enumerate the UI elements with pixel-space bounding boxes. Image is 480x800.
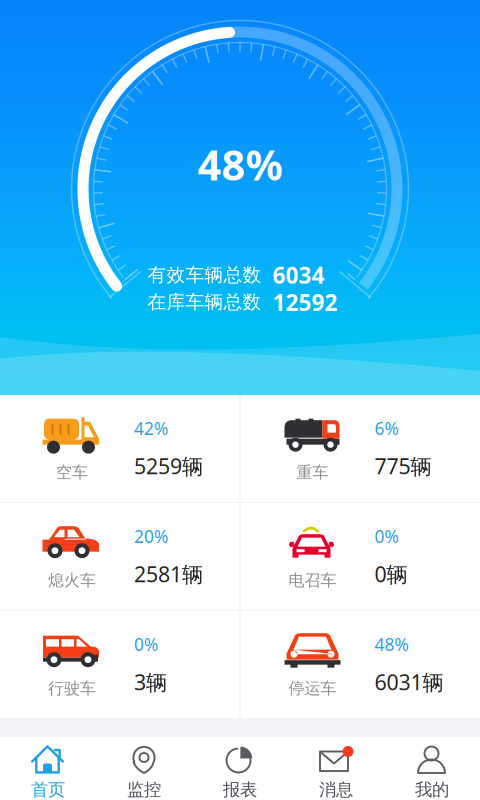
staticText: 电召车 — [288, 571, 336, 590]
staticText: 3辆 — [134, 668, 167, 696]
button[interactable]: 消息 — [288, 737, 384, 800]
button[interactable]: 空车 — [0, 395, 239, 502]
button[interactable]: 报表 — [192, 737, 288, 800]
button[interactable]: 电召车 — [240, 503, 480, 610]
button[interactable]: 重车 — [240, 395, 480, 502]
staticText: 有效车辆总数 — [147, 264, 261, 286]
staticText: 48% — [197, 137, 282, 192]
staticText: 监控 — [127, 779, 161, 800]
staticText: 12592 — [272, 287, 337, 317]
staticText: 5259辆 — [134, 452, 203, 480]
staticText: 20% — [134, 525, 168, 548]
staticText: 我的 — [415, 779, 449, 800]
staticText: 0% — [134, 633, 158, 656]
staticText: 重车 — [296, 463, 328, 482]
button[interactable]: 行驶车 — [0, 611, 239, 718]
staticText: 0辆 — [374, 560, 407, 588]
staticText: 42% — [134, 417, 168, 440]
button[interactable]: 我的 — [384, 737, 480, 800]
staticText: 48% — [374, 633, 408, 656]
staticText: 熄火车 — [48, 571, 96, 590]
staticText: 首页 — [31, 779, 65, 800]
staticText: 2581辆 — [134, 560, 203, 588]
button[interactable]: 监控 — [96, 737, 192, 800]
staticText: 在库车辆总数 — [147, 291, 261, 314]
staticText: 775辆 — [374, 452, 431, 480]
staticText: 空车 — [56, 463, 88, 482]
button[interactable]: 首页 — [0, 737, 96, 800]
staticText: 6034 — [272, 260, 324, 290]
staticText: 行驶车 — [48, 679, 96, 698]
button[interactable]: 熄火车 — [0, 503, 239, 610]
staticText: 停运车 — [288, 679, 336, 698]
staticText: 报表 — [223, 779, 257, 800]
staticText: 6031辆 — [374, 668, 443, 696]
staticText: 6% — [374, 417, 398, 440]
staticText: 消息 — [319, 779, 353, 800]
button[interactable]: 停运车 — [240, 611, 480, 718]
staticText: 0% — [374, 525, 398, 548]
